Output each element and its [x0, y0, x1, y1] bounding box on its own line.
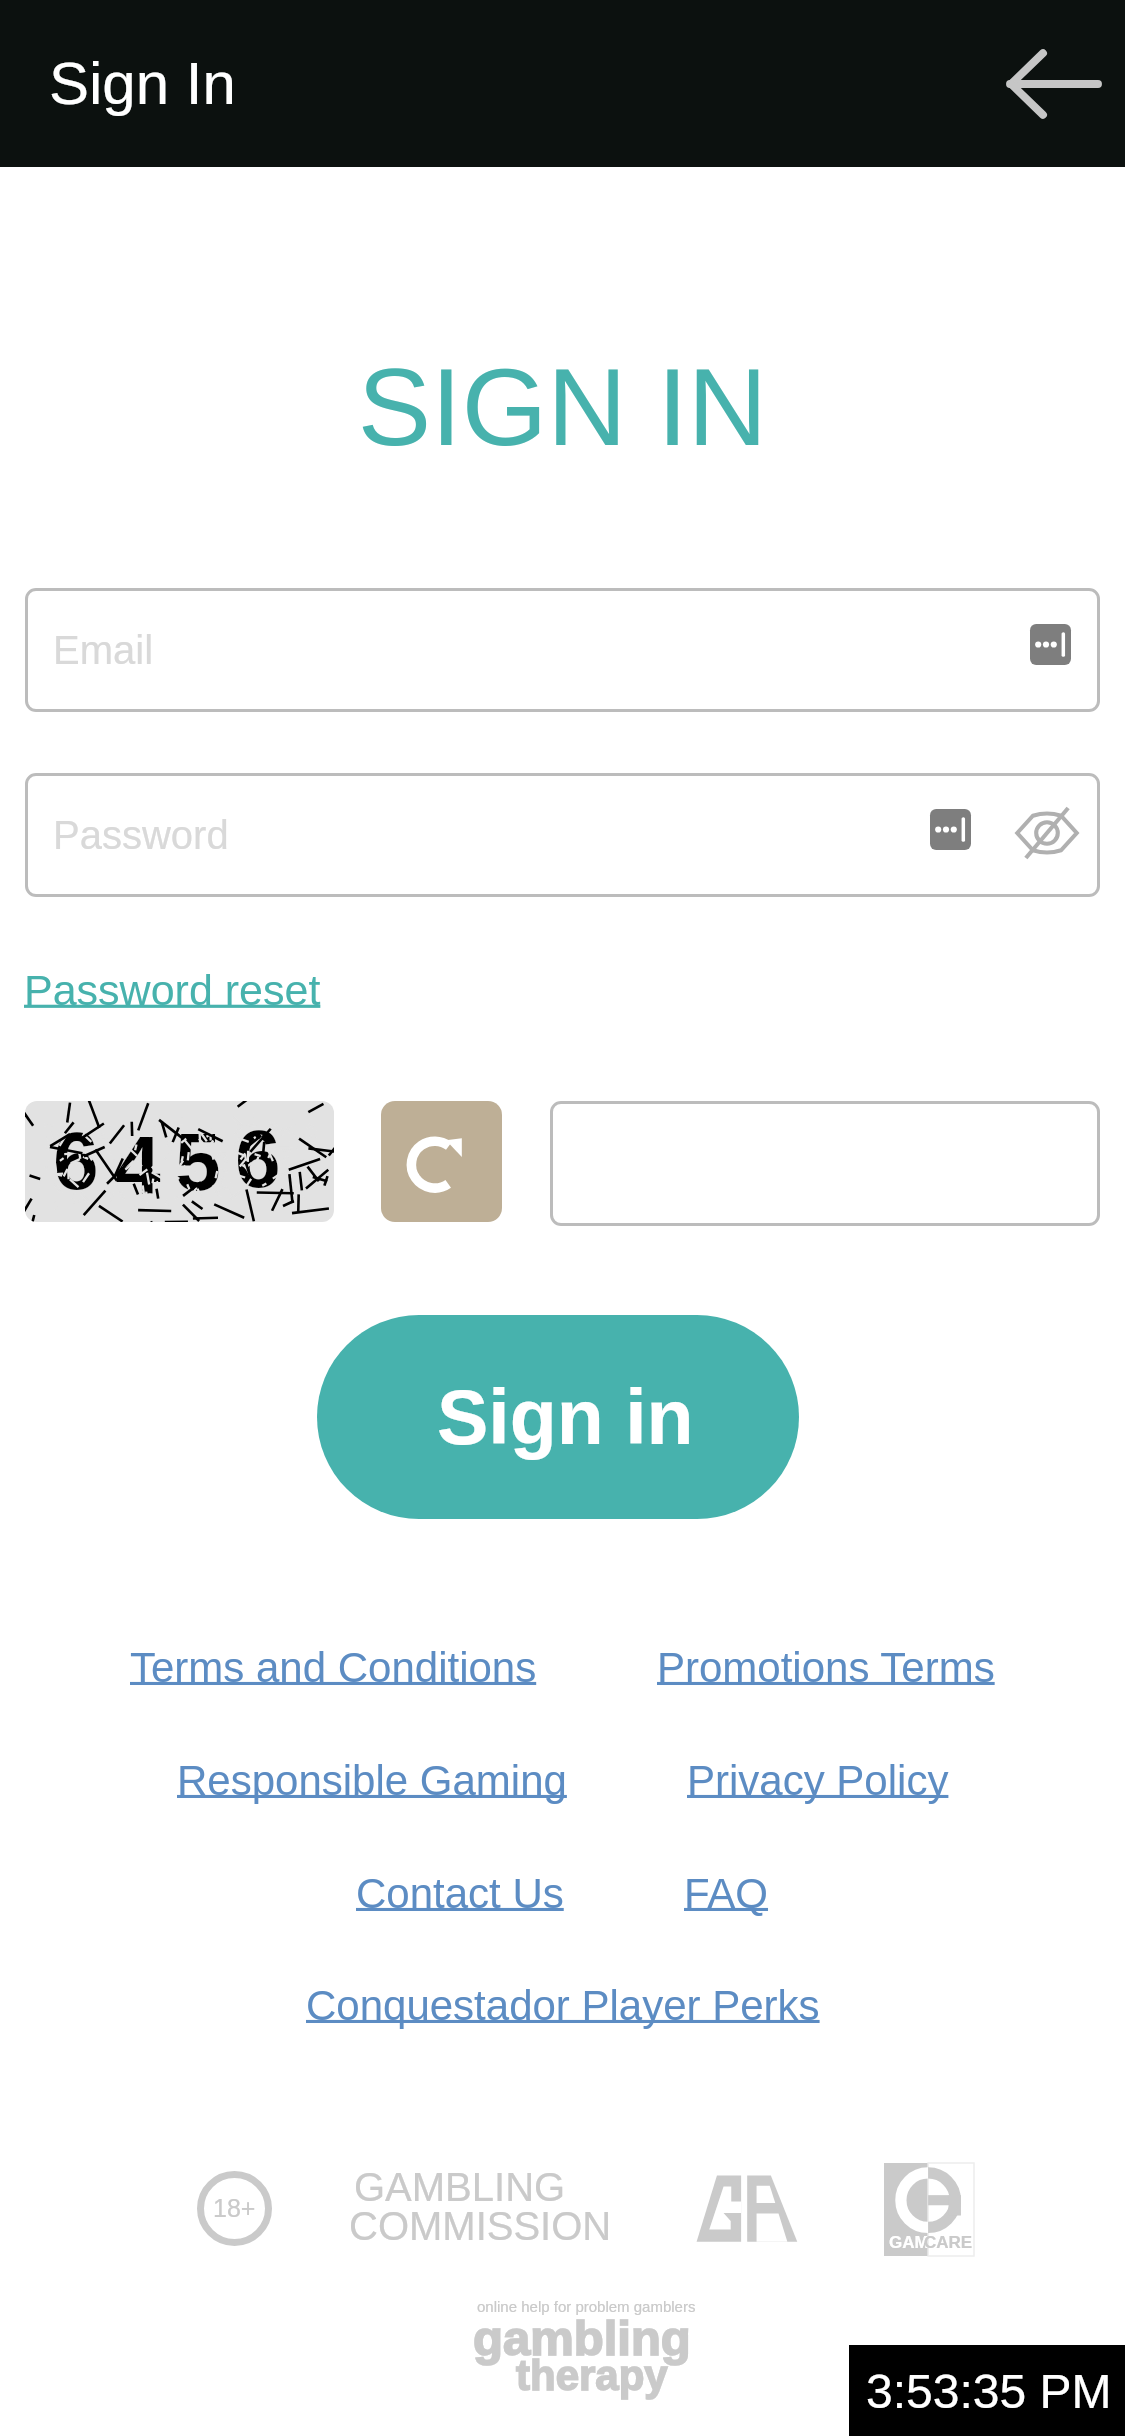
button[interactable]: Privacy Policy	[687, 1757, 949, 1804]
button[interactable]: Autofill saved password	[1030, 624, 1071, 665]
button[interactable]: Password reset	[24, 966, 321, 1014]
staticText: Promotions Terms	[657, 1644, 995, 1691]
staticText: Terms and Conditions	[130, 1644, 537, 1691]
staticText: online help for problem gamblers	[477, 2298, 696, 2315]
staticText: Email	[53, 628, 154, 673]
button[interactable]: Password	[25, 773, 1100, 897]
button[interactable]	[550, 1101, 1100, 1226]
staticText: SIGN IN	[0, 345, 1125, 468]
staticText: GAM	[889, 2233, 929, 2252]
staticText: 6	[235, 1113, 281, 1205]
staticText: Privacy Policy	[687, 1757, 949, 1804]
staticText: Sign in	[437, 1374, 694, 1460]
staticText: Contact Us	[356, 1870, 564, 1917]
staticText: therapy	[516, 2352, 668, 2399]
button[interactable]: Show password	[1014, 803, 1080, 863]
staticText: CARE	[924, 2233, 973, 2252]
staticText: COMMISSION	[349, 2204, 612, 2249]
staticText: 3:53:35 PM	[866, 2365, 1112, 2419]
staticText: GAMBLING	[354, 2165, 566, 2210]
staticText: Conquestador Player Perks	[306, 1982, 820, 2029]
staticText: 5	[175, 1116, 221, 1208]
button[interactable]: Promotions Terms	[657, 1644, 995, 1691]
button[interactable]: Responsible Gaming	[177, 1757, 567, 1804]
staticText: Sign In	[49, 50, 236, 117]
button[interactable]: Back	[999, 29, 1109, 139]
staticText: Password reset	[24, 966, 321, 1014]
button[interactable]: Email	[25, 588, 1100, 712]
staticText: gambling	[473, 2311, 691, 2366]
button[interactable]: Refresh captcha	[381, 1101, 502, 1222]
button[interactable]: Sign in	[317, 1315, 799, 1519]
staticText: 4	[115, 1119, 161, 1211]
staticText: Password	[53, 813, 229, 858]
button[interactable]: Contact Us	[356, 1870, 564, 1917]
button[interactable]: Conquestador Player Perks	[306, 1982, 820, 2029]
staticText: Responsible Gaming	[177, 1757, 567, 1804]
button[interactable]: Terms and Conditions	[130, 1644, 537, 1691]
staticText: 6	[53, 1115, 99, 1207]
staticText: FAQ	[684, 1870, 769, 1917]
button[interactable]: FAQ	[684, 1870, 769, 1917]
other: Captcha image	[25, 1101, 334, 1222]
staticText: 18+	[213, 2194, 256, 2222]
button[interactable]: Autofill saved password	[930, 809, 971, 850]
